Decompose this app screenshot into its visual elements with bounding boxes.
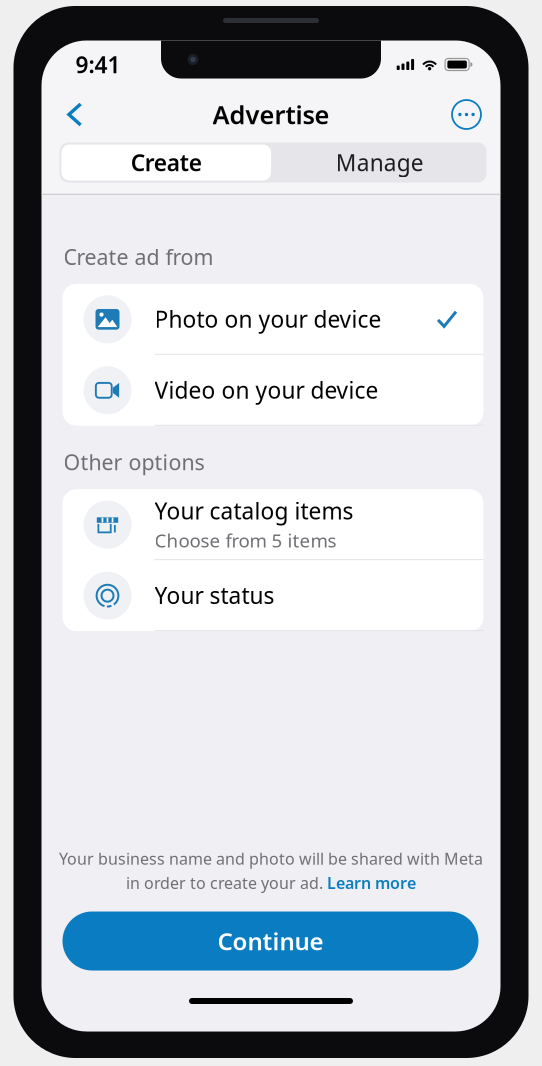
button[interactable]: Continue — [62, 911, 478, 970]
staticText: Advertise — [212, 98, 329, 131]
staticText: Other options — [63, 448, 204, 476]
staticText: Your catalog items — [154, 496, 353, 526]
staticText: in order to create your ad. — [126, 872, 327, 893]
button[interactable]: Your status — [62, 560, 483, 631]
button[interactable]: More options — [444, 92, 488, 136]
button[interactable]: Create — [59, 142, 273, 182]
staticText: Your business name and photo will be sha… — [59, 848, 483, 869]
staticText: 9:41 — [75, 49, 120, 79]
button[interactable]: Learn more — [327, 872, 416, 893]
button[interactable]: Your catalog items — [62, 489, 483, 560]
button[interactable]: Photo on your device — [62, 284, 483, 355]
staticText: Your status — [154, 580, 274, 610]
staticText: Learn more — [327, 872, 416, 893]
button[interactable]: Manage — [273, 142, 486, 182]
button[interactable]: Back — [53, 92, 97, 136]
button[interactable]: Video on your device — [62, 355, 483, 426]
staticText: Create — [131, 147, 202, 177]
staticText: Create ad from — [63, 242, 213, 271]
staticText: Continue — [217, 925, 323, 957]
staticText: Manage — [336, 147, 424, 177]
staticText: Choose from 5 items — [154, 528, 336, 553]
staticText: Video on your device — [154, 375, 378, 405]
staticText: Photo on your device — [154, 304, 381, 334]
